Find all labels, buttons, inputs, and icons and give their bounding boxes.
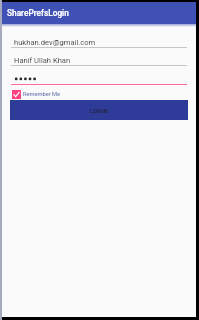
staticText: SharePrefsLogin <box>7 8 69 18</box>
button[interactable]: Remember Me <box>12 90 61 99</box>
staticText: LOGIN <box>90 107 108 114</box>
button[interactable]: LOGIN <box>10 100 188 120</box>
staticText: Hanif Ullah Khan <box>14 56 71 65</box>
staticText: Remember Me <box>23 91 61 98</box>
staticText: hukhan.dev@gmail.com <box>14 38 96 47</box>
